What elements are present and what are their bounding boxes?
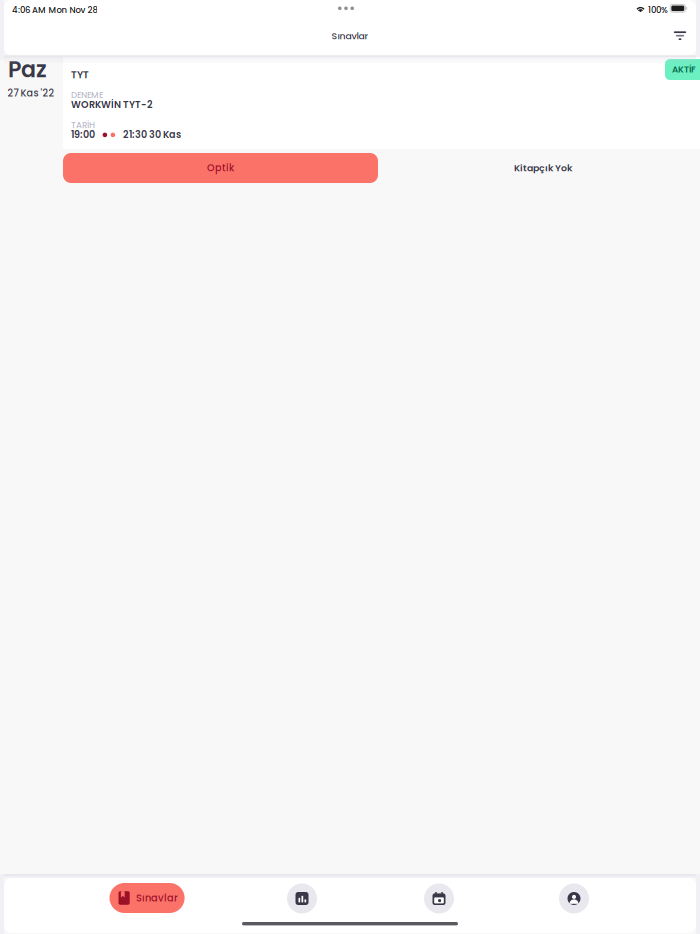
staticText: WORKWİN TYT-2 <box>71 98 153 111</box>
staticText: TARİH <box>71 119 95 131</box>
button[interactable]: Kitapçık Yok <box>384 153 700 183</box>
staticText: 27 Kas '22 <box>7 86 54 100</box>
staticText: AKTİF <box>672 63 696 76</box>
staticText: Optik <box>207 161 234 175</box>
staticText: 19:00 <box>71 128 95 141</box>
button[interactable]: Profile <box>559 883 589 913</box>
staticText: Sınavlar <box>136 891 178 905</box>
button[interactable]: Filter <box>668 24 692 48</box>
staticText: Sınavlar <box>331 29 368 43</box>
staticText: Mon Nov 28 <box>48 4 97 16</box>
button[interactable]: Calendar <box>424 883 454 913</box>
staticText: 100% <box>648 4 668 16</box>
button[interactable]: Optik <box>63 153 378 183</box>
staticText: Paz <box>8 54 47 85</box>
staticText: 21:30 30 Kas <box>123 128 181 141</box>
staticText: TYT <box>71 68 89 82</box>
staticText: Kitapçık Yok <box>514 161 572 175</box>
staticText: DENEME <box>71 89 103 101</box>
button[interactable]: Statistics <box>287 883 317 913</box>
button[interactable]: Sınavlar <box>109 883 185 913</box>
staticText: 4:06 AM <box>12 4 46 16</box>
